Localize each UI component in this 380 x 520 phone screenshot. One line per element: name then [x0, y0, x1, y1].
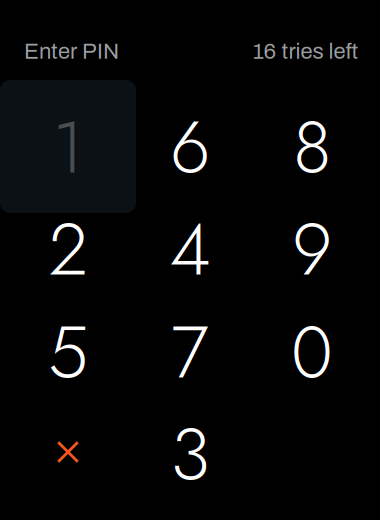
button[interactable]: 0 — [251, 301, 373, 403]
staticText: 7 — [171, 300, 209, 404]
button[interactable]: 3 — [129, 403, 251, 505]
button[interactable]: 9 — [251, 198, 373, 300]
button[interactable]: 1 — [7, 96, 129, 198]
staticText: 6 — [170, 95, 210, 199]
staticText: 5 — [48, 300, 88, 404]
button[interactable]: 7 — [129, 301, 251, 403]
staticText: 8 — [293, 95, 331, 199]
button[interactable]: 8 — [251, 96, 373, 198]
staticText: 16 tries left — [252, 39, 358, 63]
staticText: 2 — [48, 197, 87, 301]
staticText: 9 — [292, 197, 332, 301]
button[interactable]: 5 — [7, 301, 129, 403]
button[interactable]: 2 — [7, 198, 129, 300]
staticText: Enter PIN — [24, 39, 119, 63]
button[interactable]: Delete — [7, 401, 129, 503]
staticText: 3 — [170, 402, 209, 506]
staticText: 1 — [52, 95, 83, 199]
button[interactable]: 6 — [129, 96, 251, 198]
staticText: 4 — [169, 197, 210, 301]
staticText: 0 — [291, 300, 333, 404]
button[interactable]: 4 — [129, 198, 251, 300]
